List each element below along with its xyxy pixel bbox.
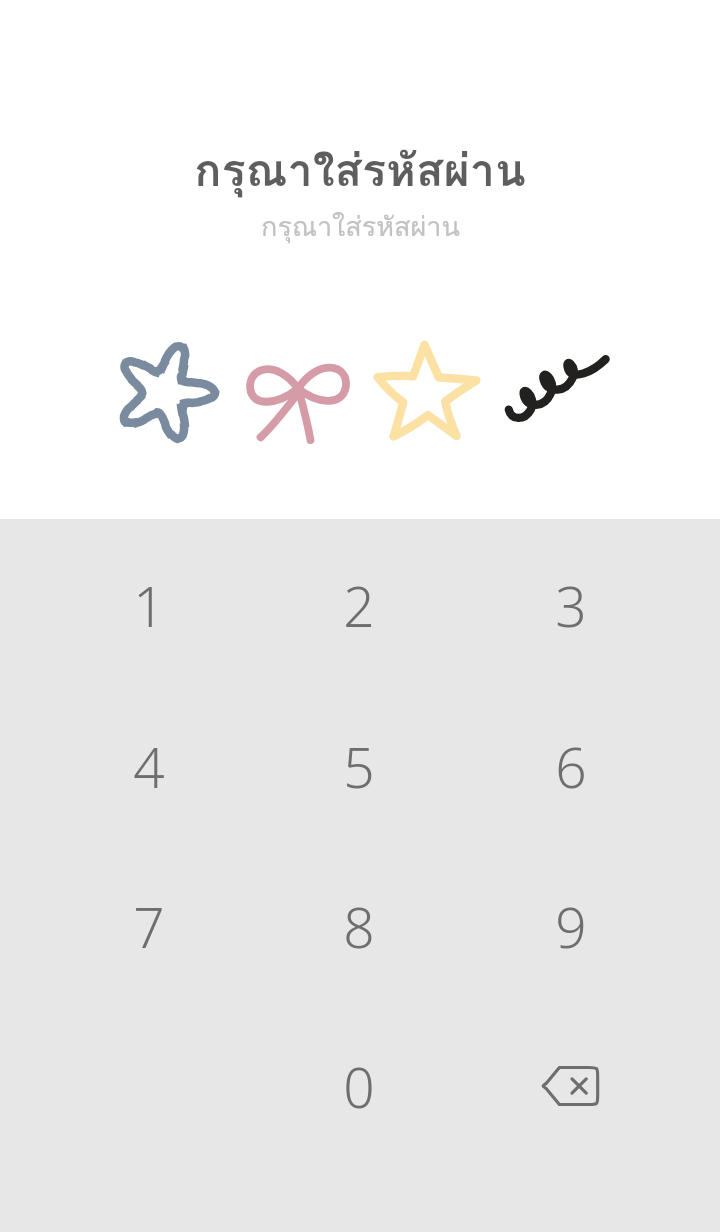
staticText: 9 (555, 889, 587, 964)
staticText: 2 (343, 568, 375, 643)
staticText: 3 (555, 568, 587, 643)
button[interactable]: 0 (284, 1011, 434, 1161)
button[interactable]: 1 (74, 530, 224, 680)
staticText: 7 (133, 889, 165, 964)
staticText: 8 (343, 889, 375, 964)
button[interactable]: 2 (284, 530, 434, 680)
button[interactable]: 9 (496, 851, 646, 1001)
button[interactable]: 8 (284, 851, 434, 1001)
staticText: 1 (133, 568, 165, 643)
staticText: กรุณาใส่รหัสผ่าน (261, 205, 460, 247)
button[interactable]: 5 (284, 691, 434, 841)
button[interactable]: 6 (496, 691, 646, 841)
staticText: 4 (133, 729, 165, 804)
button[interactable]: 4 (74, 691, 224, 841)
staticText: 6 (555, 729, 587, 804)
button[interactable]: Backspace (496, 1011, 646, 1161)
button[interactable]: 3 (496, 530, 646, 680)
staticText: 5 (343, 729, 375, 804)
staticText: 0 (343, 1049, 375, 1124)
button[interactable]: 7 (74, 851, 224, 1001)
staticText: กรุณาใส่รหัสผ่าน (194, 134, 526, 198)
